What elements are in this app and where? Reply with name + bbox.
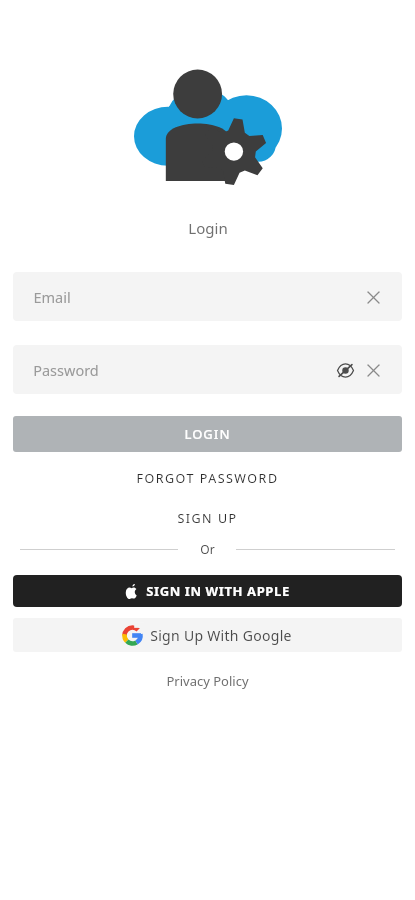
button[interactable]: Clear Password xyxy=(360,357,386,383)
staticText: SIGN UP xyxy=(177,510,238,527)
button[interactable]: SIGN UP xyxy=(0,504,415,533)
staticText: LOGIN xyxy=(184,425,231,443)
button[interactable]: LOGIN xyxy=(13,416,402,452)
button[interactable]: SIGN IN WITH APPLE xyxy=(13,575,402,607)
staticText: Sign Up With Google xyxy=(150,626,292,645)
button[interactable]: Clear Email xyxy=(360,284,386,310)
staticText: Password xyxy=(33,360,99,380)
button[interactable]: Password xyxy=(13,345,402,394)
staticText: Privacy Policy xyxy=(166,672,249,690)
button[interactable]: Show password xyxy=(332,357,358,383)
button[interactable]: FORGOT PASSWORD xyxy=(0,464,415,493)
button[interactable]: Sign Up With Google xyxy=(13,618,402,652)
staticText: SIGN IN WITH APPLE xyxy=(146,582,290,600)
staticText: Email xyxy=(33,287,71,307)
button[interactable]: Email xyxy=(13,272,402,321)
button[interactable]: Privacy Policy xyxy=(0,668,415,694)
staticText: Login xyxy=(188,218,228,238)
staticText: Or xyxy=(200,541,215,557)
staticText: FORGOT PASSWORD xyxy=(136,470,279,487)
